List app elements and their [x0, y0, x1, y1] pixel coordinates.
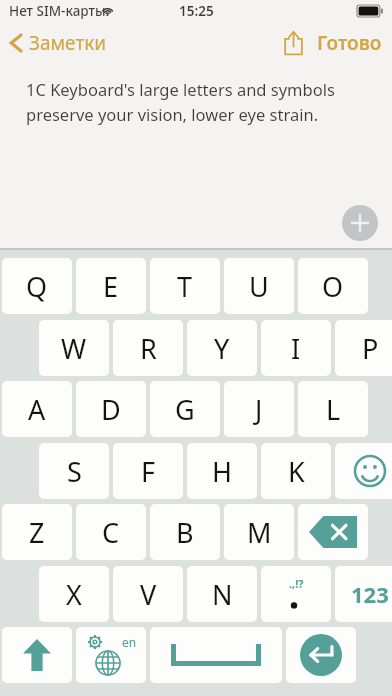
button[interactable]: Y [187, 320, 257, 376]
button[interactable]: X [39, 566, 109, 622]
staticText: H [212, 453, 233, 490]
staticText: 1C Keyboard's large letters and symbols … [26, 78, 335, 125]
staticText: L [326, 391, 341, 428]
button[interactable]: L [298, 381, 368, 437]
button[interactable]: G [150, 381, 220, 437]
button[interactable]: R [113, 320, 183, 376]
staticText: F [141, 453, 156, 490]
button[interactable]: W [39, 320, 109, 376]
button[interactable]: O [298, 258, 368, 314]
staticText: U [249, 268, 269, 305]
button[interactable]: U [224, 258, 294, 314]
button[interactable]: B [150, 504, 220, 560]
button[interactable]: T [150, 258, 220, 314]
button[interactable]: Return [286, 627, 356, 683]
staticText: Нет SIM-карты [9, 2, 106, 20]
staticText: T [177, 268, 193, 305]
staticText: Q [26, 268, 48, 305]
staticText: C [102, 514, 120, 551]
button[interactable]: Share [278, 25, 309, 61]
button[interactable]: N [187, 566, 257, 622]
staticText: en [122, 634, 137, 650]
button[interactable]: E [76, 258, 146, 314]
button[interactable]: Space [150, 627, 282, 683]
staticText: 123 [351, 579, 389, 609]
button[interactable]: P [335, 320, 392, 376]
staticText: W [61, 330, 87, 367]
staticText: X [66, 576, 82, 613]
button[interactable]: I [261, 320, 331, 376]
button[interactable]: D [76, 381, 146, 437]
button[interactable]: H [187, 443, 257, 499]
staticText: S [67, 453, 82, 490]
staticText: Y [214, 330, 230, 367]
staticText: 15:25 [179, 2, 214, 20]
staticText: P [362, 330, 379, 367]
staticText: R [140, 330, 157, 367]
staticText: K [288, 453, 305, 490]
staticText: N [212, 576, 233, 613]
staticText: I [291, 330, 301, 367]
staticText: Готово [317, 30, 382, 56]
button[interactable]: Numbers [335, 566, 392, 622]
button[interactable]: F [113, 443, 183, 499]
staticText: O [322, 268, 344, 305]
staticText: A [28, 391, 46, 428]
button[interactable]: Switch language [76, 627, 146, 683]
staticText: Z [29, 514, 45, 551]
button[interactable]: Q [2, 258, 72, 314]
button[interactable]: V [113, 566, 183, 622]
button[interactable]: Готово [309, 25, 392, 61]
staticText: V [140, 576, 157, 613]
staticText: G [175, 391, 195, 428]
button[interactable]: Add [342, 205, 378, 241]
button[interactable]: M [224, 504, 294, 560]
button[interactable]: Z [2, 504, 72, 560]
button[interactable]: J [224, 381, 294, 437]
button[interactable]: Punctuation [261, 566, 331, 622]
button[interactable]: Backspace [298, 504, 368, 560]
button[interactable]: Shift [2, 627, 72, 683]
staticText: Заметки [29, 30, 107, 56]
button[interactable]: S [39, 443, 109, 499]
button[interactable]: A [2, 381, 72, 437]
staticText: .,!? [289, 576, 304, 591]
button[interactable]: Заметки [0, 26, 117, 60]
staticText: D [101, 391, 121, 428]
button[interactable]: Emoji [335, 443, 392, 499]
staticText: J [255, 391, 263, 428]
staticText: M [247, 514, 272, 551]
button[interactable]: C [76, 504, 146, 560]
staticText: E [103, 268, 119, 305]
staticText: B [176, 514, 194, 551]
button[interactable]: K [261, 443, 331, 499]
